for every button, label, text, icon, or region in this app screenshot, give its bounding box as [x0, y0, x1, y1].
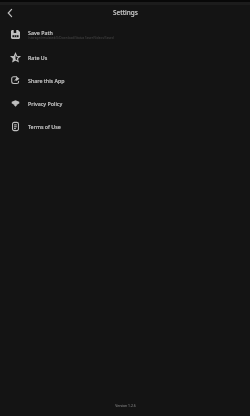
staticText: Share this App — [28, 77, 65, 84]
staticText: Settings — [113, 8, 138, 17]
button[interactable]: Privacy Policy — [0, 92, 250, 115]
button[interactable]: Back — [2, 5, 18, 21]
button[interactable]: Terms of Use — [0, 115, 250, 138]
staticText: Save Path — [28, 29, 53, 36]
staticText: /storage/emulated/0/Download/Status Save… — [28, 36, 114, 40]
button[interactable]: Rate Us — [0, 46, 250, 69]
staticText: Version 1.2.6 — [115, 403, 136, 408]
button[interactable]: Share this App — [0, 69, 250, 92]
staticText: Rate Us — [28, 54, 48, 61]
staticText: Terms of Use — [28, 123, 61, 130]
button[interactable]: Save Path — [0, 23, 250, 46]
staticText: Privacy Policy — [28, 100, 63, 107]
